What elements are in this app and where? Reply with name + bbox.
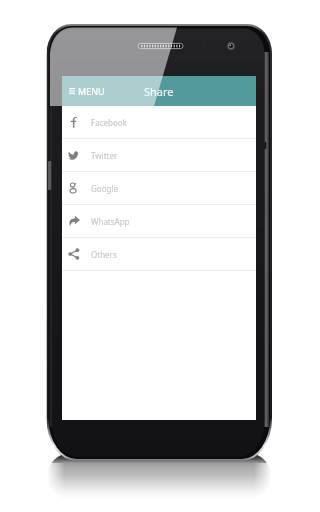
staticText: Share [144, 84, 174, 99]
button[interactable]: Google [62, 172, 256, 205]
button[interactable]: Facebook [62, 106, 256, 139]
button[interactable]: Open navigation menu [67, 80, 107, 102]
staticText: Others [91, 249, 117, 260]
button[interactable]: WhatsApp [62, 205, 256, 238]
staticText: WhatsApp [91, 216, 130, 227]
staticText: Facebook [91, 117, 127, 128]
button[interactable]: Others [62, 238, 256, 271]
staticText: Twitter [91, 150, 118, 161]
staticText: MENU [78, 85, 105, 97]
button[interactable]: Twitter [62, 139, 256, 172]
staticText: Google [91, 183, 118, 194]
